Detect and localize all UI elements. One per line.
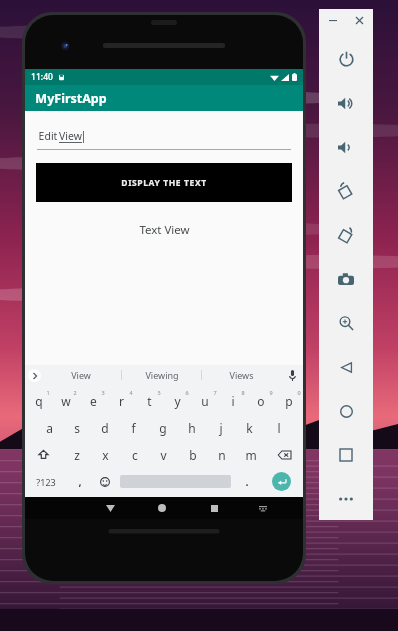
- button[interactable]: Emoji: [92, 468, 117, 495]
- staticText: s: [74, 420, 80, 436]
- button[interactable]: Home: [319, 389, 373, 433]
- staticText: y: [174, 393, 181, 409]
- button[interactable]: .: [234, 468, 259, 495]
- button[interactable]: x: [91, 441, 120, 468]
- staticText: Text View: [139, 222, 190, 238]
- button[interactable]: Enter: [272, 472, 291, 491]
- staticText: h: [188, 420, 196, 436]
- staticText: Edit: [37, 129, 59, 143]
- button[interactable]: k: [235, 414, 264, 441]
- staticText: 9: [269, 389, 273, 396]
- button[interactable]: c: [120, 441, 149, 468]
- button[interactable]: Expand suggestions: [28, 369, 41, 382]
- button[interactable]: Voice input: [281, 365, 303, 385]
- button[interactable]: g: [148, 414, 177, 441]
- button[interactable]: Volume up: [319, 81, 373, 125]
- button[interactable]: o: [247, 387, 275, 414]
- staticText: a: [46, 420, 53, 436]
- staticText: r: [119, 393, 124, 409]
- button[interactable]: Rotate left: [319, 169, 373, 213]
- button[interactable]: Shift: [25, 441, 62, 468]
- button[interactable]: Volume down: [319, 125, 373, 169]
- staticText: k: [246, 420, 253, 436]
- button[interactable]: Close: [351, 12, 367, 28]
- staticText: p: [285, 393, 293, 409]
- staticText: DISPLAY THE TEXT: [121, 177, 207, 189]
- button[interactable]: a: [35, 414, 63, 441]
- staticText: ,: [78, 474, 82, 489]
- button[interactable]: Viewing: [122, 365, 201, 385]
- button[interactable]: Switch keyboard: [240, 497, 285, 519]
- button[interactable]: Screenshot: [319, 257, 373, 301]
- staticText: i: [231, 393, 235, 409]
- button[interactable]: y: [163, 387, 191, 414]
- staticText: 1: [46, 389, 50, 396]
- staticText: b: [189, 447, 197, 463]
- button[interactable]: l: [264, 414, 293, 441]
- staticText: m: [245, 447, 257, 463]
- button[interactable]: r: [107, 387, 135, 414]
- staticText: c: [132, 447, 138, 463]
- button[interactable]: Views: [202, 365, 281, 385]
- button[interactable]: i: [219, 387, 247, 414]
- button[interactable]: Recents: [319, 433, 373, 477]
- button[interactable]: Backspace: [265, 441, 303, 468]
- staticText: 7: [213, 389, 217, 396]
- button[interactable]: u: [191, 387, 219, 414]
- staticText: v: [160, 447, 167, 463]
- button[interactable]: j: [206, 414, 235, 441]
- button[interactable]: s: [63, 414, 91, 441]
- button[interactable]: Recents: [188, 497, 240, 519]
- staticText: 2: [73, 389, 77, 396]
- staticText: ?123: [36, 476, 56, 488]
- staticText: 8: [241, 389, 245, 396]
- button[interactable]: m: [236, 441, 265, 468]
- staticText: View: [71, 369, 91, 381]
- staticText: l: [277, 420, 281, 436]
- button[interactable]: ,: [67, 468, 92, 495]
- button[interactable]: ?123: [25, 468, 67, 495]
- staticText: u: [201, 393, 209, 409]
- staticText: x: [102, 447, 109, 463]
- staticText: 6: [185, 389, 189, 396]
- staticText: MyFirstApp: [35, 90, 107, 107]
- button[interactable]: h: [177, 414, 206, 441]
- button[interactable]: z: [62, 441, 91, 468]
- button[interactable]: w: [52, 387, 79, 414]
- button[interactable]: Rotate right: [319, 213, 373, 257]
- staticText: View: [59, 129, 82, 143]
- button[interactable]: DISPLAY THE TEXT: [36, 163, 292, 202]
- staticText: t: [147, 393, 152, 409]
- button[interactable]: Hide keyboard: [84, 497, 136, 519]
- button[interactable]: p: [275, 387, 303, 414]
- button[interactable]: q: [25, 387, 52, 414]
- button[interactable]: f: [119, 414, 148, 441]
- staticText: w: [61, 393, 71, 409]
- button[interactable]: Power: [319, 37, 373, 81]
- button[interactable]: v: [149, 441, 178, 468]
- staticText: 5: [157, 389, 161, 396]
- button[interactable]: Back: [319, 345, 373, 389]
- button[interactable]: Edit: [37, 129, 291, 150]
- button[interactable]: Home: [136, 497, 188, 519]
- staticText: 4: [129, 389, 133, 396]
- staticText: 3: [101, 389, 105, 396]
- button[interactable]: d: [91, 414, 119, 441]
- staticText: o: [257, 393, 265, 409]
- button[interactable]: More: [319, 477, 373, 520]
- staticText: 11:40: [31, 71, 53, 83]
- staticText: .: [245, 474, 249, 489]
- button[interactable]: n: [207, 441, 236, 468]
- button[interactable]: b: [178, 441, 207, 468]
- button[interactable]: View: [41, 365, 121, 385]
- staticText: Viewing: [145, 369, 179, 381]
- staticText: q: [35, 393, 43, 409]
- button[interactable]: Minimize: [325, 12, 341, 28]
- staticText: e: [90, 393, 97, 409]
- staticText: g: [159, 420, 167, 436]
- button[interactable]: t: [135, 387, 163, 414]
- button[interactable]: e: [79, 387, 107, 414]
- staticText: n: [218, 447, 226, 463]
- button[interactable]: Zoom: [319, 301, 373, 345]
